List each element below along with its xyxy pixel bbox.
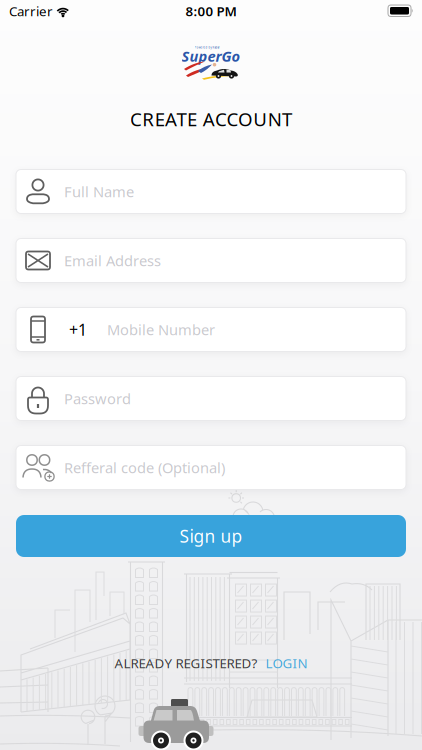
staticText: CREATE ACCOUNT (130, 107, 292, 131)
staticText: LOGIN (265, 654, 307, 672)
staticText: Full Name (64, 182, 134, 201)
staticText: ALREADY REGISTERED? (114, 654, 257, 672)
button[interactable]: Sign up (16, 515, 406, 557)
button[interactable]: LOGIN (265, 654, 307, 672)
staticText: +1 (69, 319, 87, 340)
staticText: SuperGo (181, 46, 240, 66)
staticText: Powered by Radar (194, 46, 219, 49)
button[interactable]: Password (16, 376, 406, 420)
button[interactable]: Full Name (16, 169, 406, 213)
staticText: Email Address (64, 251, 161, 270)
staticText: Password (64, 389, 131, 408)
staticText: Refferal code (Optional) (64, 458, 225, 477)
button[interactable]: Email Address (16, 238, 406, 282)
button[interactable]: Refferal code (Optional) (16, 445, 406, 489)
staticText: Mobile Number (107, 320, 215, 339)
staticText: 8:00 PM (185, 2, 236, 20)
staticText: Carrier (9, 2, 53, 20)
button[interactable]: +1 (16, 307, 406, 351)
staticText: Sign up (179, 524, 242, 547)
